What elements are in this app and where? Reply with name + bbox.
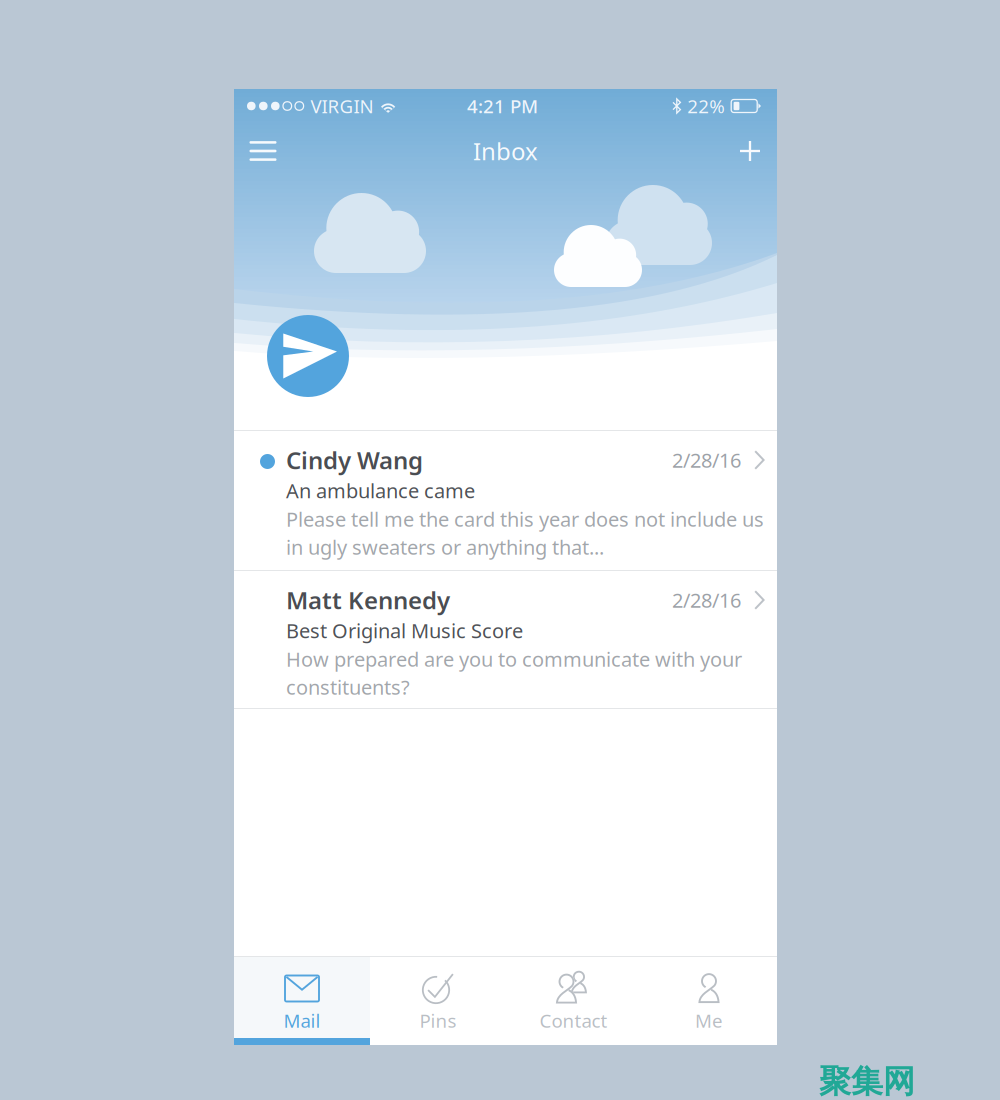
staticText: VIRGIN — [311, 94, 374, 118]
button[interactable]: Compose — [726, 123, 774, 179]
button[interactable]: Mail — [234, 957, 370, 1045]
staticText: Cindy Wang — [286, 444, 423, 476]
staticText: Best Original Music Score — [286, 617, 523, 644]
staticText: Contact — [539, 1008, 607, 1033]
staticText: Inbox — [473, 135, 538, 167]
staticText: 22% — [687, 94, 725, 118]
button[interactable]: Cindy Wang — [234, 431, 777, 570]
staticText: An ambulance came — [286, 477, 475, 504]
staticText: 2/28/16 — [672, 587, 741, 613]
staticText: How prepared are you to communicate with… — [286, 646, 742, 672]
button[interactable]: Compose message — [267, 315, 349, 397]
staticText: Pins — [419, 1008, 456, 1033]
button[interactable]: Me — [641, 957, 777, 1045]
button[interactable]: Matt Kennedy — [234, 571, 777, 708]
button[interactable]: Pins — [370, 957, 506, 1045]
staticText: Matt Kennedy — [286, 584, 450, 616]
staticText: 2/28/16 — [672, 447, 741, 473]
button[interactable]: Menu — [237, 123, 289, 179]
staticText: Me — [695, 1008, 723, 1033]
button[interactable]: Contact — [506, 957, 641, 1045]
staticText: 4:21 PM — [467, 94, 538, 118]
staticText: constituents? — [286, 674, 410, 700]
staticText: 聚集网 — [819, 1062, 915, 1100]
staticText: Please tell me the card this year does n… — [286, 506, 764, 532]
staticText: Mail — [283, 1008, 320, 1033]
staticText: in ugly sweaters or anything that... — [286, 534, 604, 560]
